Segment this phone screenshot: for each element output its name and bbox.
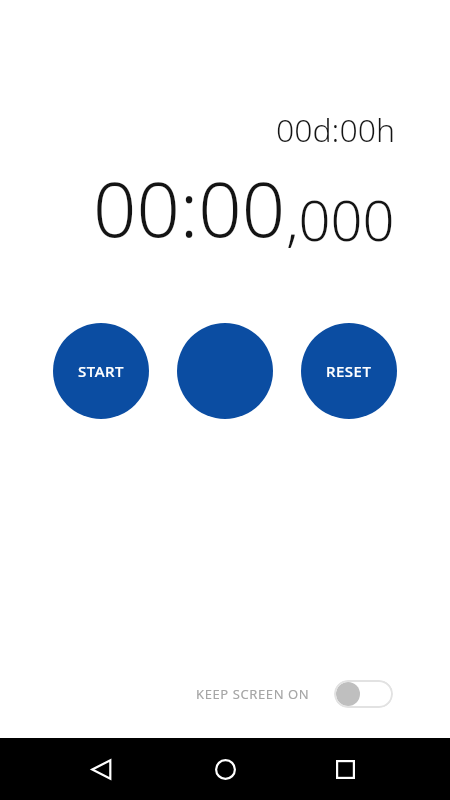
- other: Keep screen on toggle: [334, 680, 393, 708]
- staticText: RESET: [326, 361, 372, 381]
- button[interactable]: START: [53, 323, 149, 419]
- button[interactable]: Back: [89, 738, 113, 800]
- button[interactable]: Lap: [177, 323, 273, 419]
- button[interactable]: RESET: [301, 323, 397, 419]
- staticText: KEEP SCREEN ON: [196, 685, 310, 703]
- button[interactable]: Recent apps: [328, 752, 362, 786]
- button[interactable]: KEEP SCREEN ON: [196, 676, 393, 712]
- staticText: 00d:00h: [0, 108, 395, 152]
- staticText: ,000: [286, 181, 395, 257]
- button[interactable]: Home: [208, 752, 242, 786]
- staticText: 00:00: [93, 156, 286, 260]
- staticText: START: [78, 361, 124, 381]
